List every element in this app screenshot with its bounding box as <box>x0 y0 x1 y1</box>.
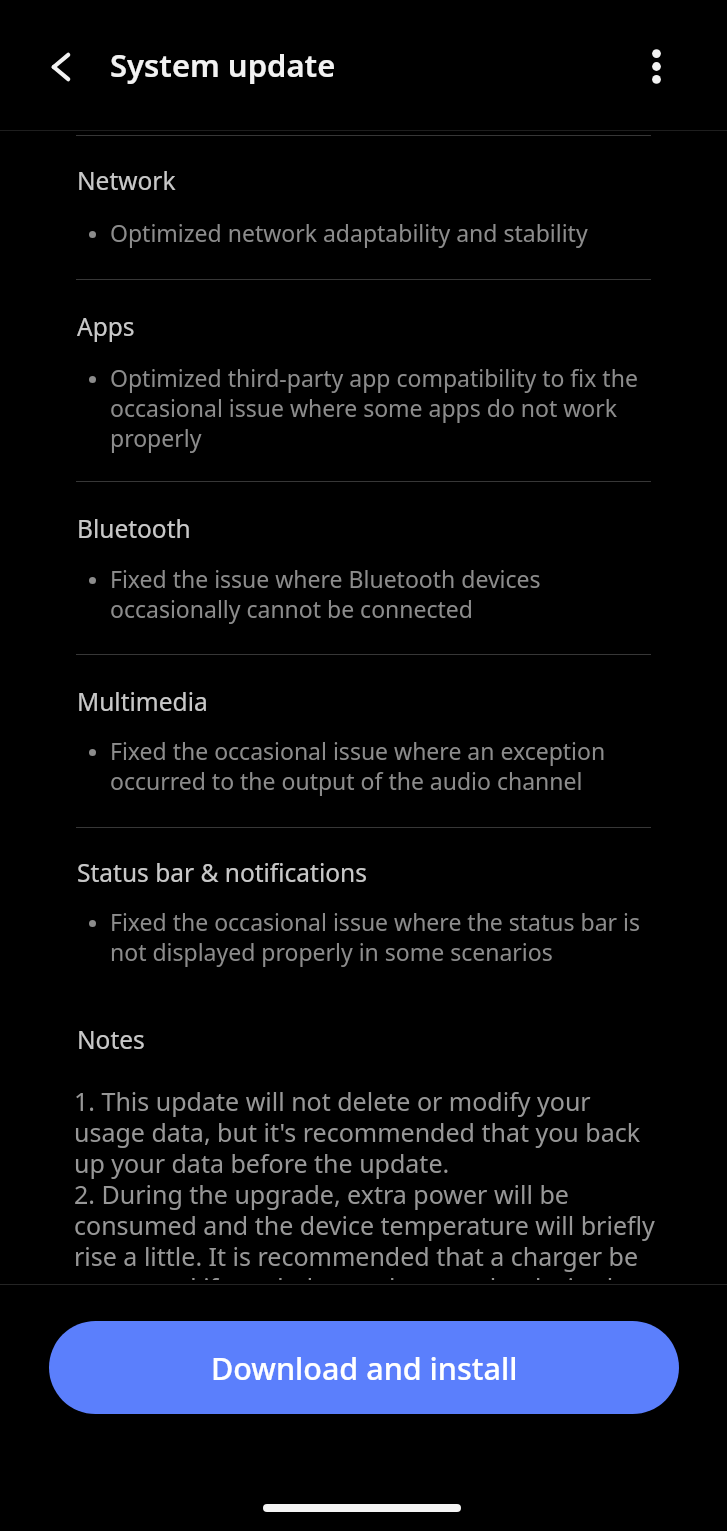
staticText: Multimedia <box>77 685 208 718</box>
staticText: Optimized network adaptability and stabi… <box>110 219 655 249</box>
staticText: System update <box>110 44 336 86</box>
staticText: Status bar & notifications <box>77 856 367 889</box>
staticText: Download and install <box>211 1347 518 1389</box>
button[interactable]: Download and install <box>49 1321 679 1414</box>
button[interactable]: More options <box>628 38 685 95</box>
staticText: Notes <box>77 1023 145 1056</box>
staticText: 1. This update will not delete or modify… <box>74 1087 662 1280</box>
staticText: Fixed the occasional issue where an exce… <box>110 737 655 797</box>
button[interactable]: Back <box>33 39 89 95</box>
staticText: Optimized third-party app compatibility … <box>110 364 655 454</box>
staticText: Bluetooth <box>77 512 191 545</box>
staticText: Network <box>77 164 176 197</box>
staticText: Fixed the occasional issue where the sta… <box>110 908 655 968</box>
staticText: Fixed the issue where Bluetooth devices … <box>110 565 655 625</box>
staticText: Apps <box>77 310 135 343</box>
